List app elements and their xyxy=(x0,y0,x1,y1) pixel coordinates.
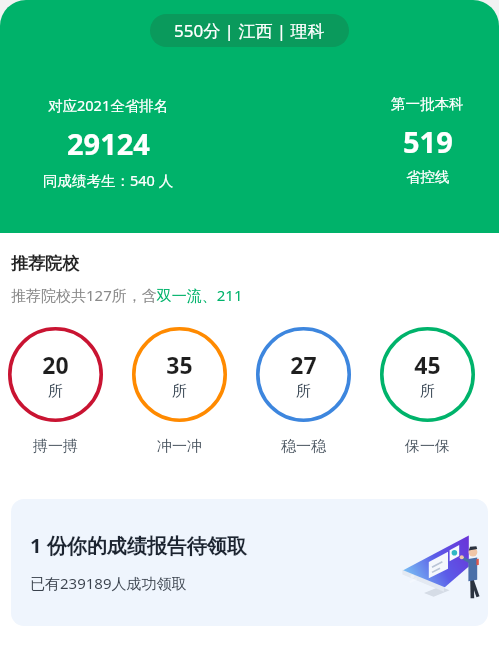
staticText: 所 xyxy=(172,382,187,401)
button[interactable]: 1 份你的成绩报告待领取 xyxy=(11,499,488,626)
staticText: 推荐院校共127所，含双一流、211 xyxy=(11,285,243,305)
staticText: 已有239189人成功领取 xyxy=(30,573,187,593)
staticText: 稳一稳 xyxy=(281,437,326,456)
staticText: 冲一冲 xyxy=(157,437,202,456)
staticText: 550分 | 江西 | 理科 xyxy=(174,19,325,42)
staticText: 27 xyxy=(290,349,317,380)
button[interactable]: 45 xyxy=(380,327,475,456)
staticText: 搏一搏 xyxy=(33,437,78,456)
button[interactable]: 20 xyxy=(8,327,103,456)
staticText: 35 xyxy=(166,349,193,380)
staticText: 省控线 xyxy=(406,168,450,186)
button[interactable]: 27 xyxy=(256,327,351,456)
button[interactable]: 35 xyxy=(132,327,227,456)
staticText: 45 xyxy=(414,349,441,380)
staticText: 20 xyxy=(42,349,69,380)
staticText: 第一批本科 xyxy=(391,95,464,113)
staticText: 1 份你的成绩报告待领取 xyxy=(30,532,247,559)
staticText: 推荐院校 xyxy=(11,253,79,274)
staticText: 保一保 xyxy=(405,437,450,456)
staticText: 所 xyxy=(296,382,311,401)
staticText: 所 xyxy=(48,382,63,401)
staticText: 所 xyxy=(420,382,435,401)
staticText: 对应2021全省排名 xyxy=(48,95,169,115)
staticText: 29124 xyxy=(67,124,150,163)
button[interactable]: 550分 | 江西 | 理科 xyxy=(150,14,349,47)
other: 成绩报告插图 xyxy=(400,528,480,602)
staticText: 519 xyxy=(403,122,453,161)
staticText: 同成绩考生：540 人 xyxy=(43,170,174,190)
